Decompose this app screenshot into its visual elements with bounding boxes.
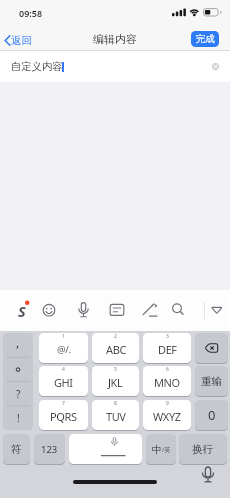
button[interactable]: 4 (39, 366, 88, 396)
button[interactable] (167, 295, 189, 325)
button[interactable]: 7 (39, 400, 88, 430)
staticText: TUV (106, 409, 126, 424)
staticText: , (16, 334, 20, 350)
staticText: WXYZ (153, 409, 181, 424)
staticText: 6 (166, 366, 169, 373)
staticText: 自定义内容 (11, 60, 63, 73)
staticText: 7 (62, 400, 65, 407)
button[interactable]: 完成 (191, 31, 219, 47)
staticText: 123 (41, 443, 58, 456)
staticText: 编辑内容 (93, 32, 137, 46)
button[interactable]: 3 (143, 333, 191, 363)
staticText: DEF (158, 342, 177, 357)
button[interactable]: 9 (143, 400, 191, 430)
staticText: 返回 (11, 34, 32, 47)
staticText: 9 (166, 400, 169, 407)
button[interactable]: 123 (34, 434, 65, 464)
button[interactable] (69, 434, 142, 464)
staticText: MNO (154, 375, 180, 390)
staticText: ! (17, 411, 20, 425)
staticText: JKL (108, 375, 123, 390)
button[interactable] (207, 295, 227, 325)
staticText: 完成 (196, 33, 215, 45)
staticText: @/. (57, 343, 71, 356)
staticText: 符 (11, 443, 22, 456)
button[interactable]: 重输 (195, 366, 228, 396)
button[interactable] (72, 295, 94, 325)
button[interactable]: 6 (143, 366, 191, 396)
button[interactable] (106, 295, 128, 325)
button[interactable] (195, 333, 228, 363)
button[interactable]: 8 (92, 400, 139, 430)
staticText: 1 (62, 333, 65, 340)
button[interactable]: 返回 (4, 34, 32, 47)
staticText: S (18, 301, 26, 321)
button[interactable]: 符 (3, 434, 30, 464)
button[interactable]: 0 (195, 400, 228, 430)
staticText: GHI (54, 375, 73, 390)
staticText: 换行 (192, 443, 214, 456)
staticText: 5 (114, 366, 117, 373)
staticText: ABC (106, 342, 126, 357)
button[interactable]: 2 (92, 333, 139, 363)
button[interactable]: S (11, 295, 32, 325)
button[interactable]: 中 (146, 434, 176, 464)
staticText: 3 (166, 333, 169, 340)
staticText: /英 (162, 446, 171, 454)
staticText: 中 (152, 443, 162, 456)
staticText: 2 (114, 333, 117, 340)
staticText: 重输 (201, 375, 223, 388)
staticText: 8 (114, 400, 117, 407)
button[interactable] (139, 295, 161, 325)
button[interactable] (38, 295, 60, 325)
button[interactable] (197, 466, 219, 490)
staticText: PQRS (50, 409, 77, 424)
staticText: 4 (62, 366, 65, 373)
staticText: 0 (208, 406, 216, 424)
staticText: 09:58 (19, 7, 43, 19)
button[interactable]: , (3, 333, 33, 430)
staticText: ? (16, 387, 21, 401)
button[interactable] (212, 63, 219, 70)
button[interactable]: 换行 (179, 434, 227, 464)
button[interactable]: 1 (39, 333, 88, 363)
button[interactable]: 5 (92, 366, 139, 396)
